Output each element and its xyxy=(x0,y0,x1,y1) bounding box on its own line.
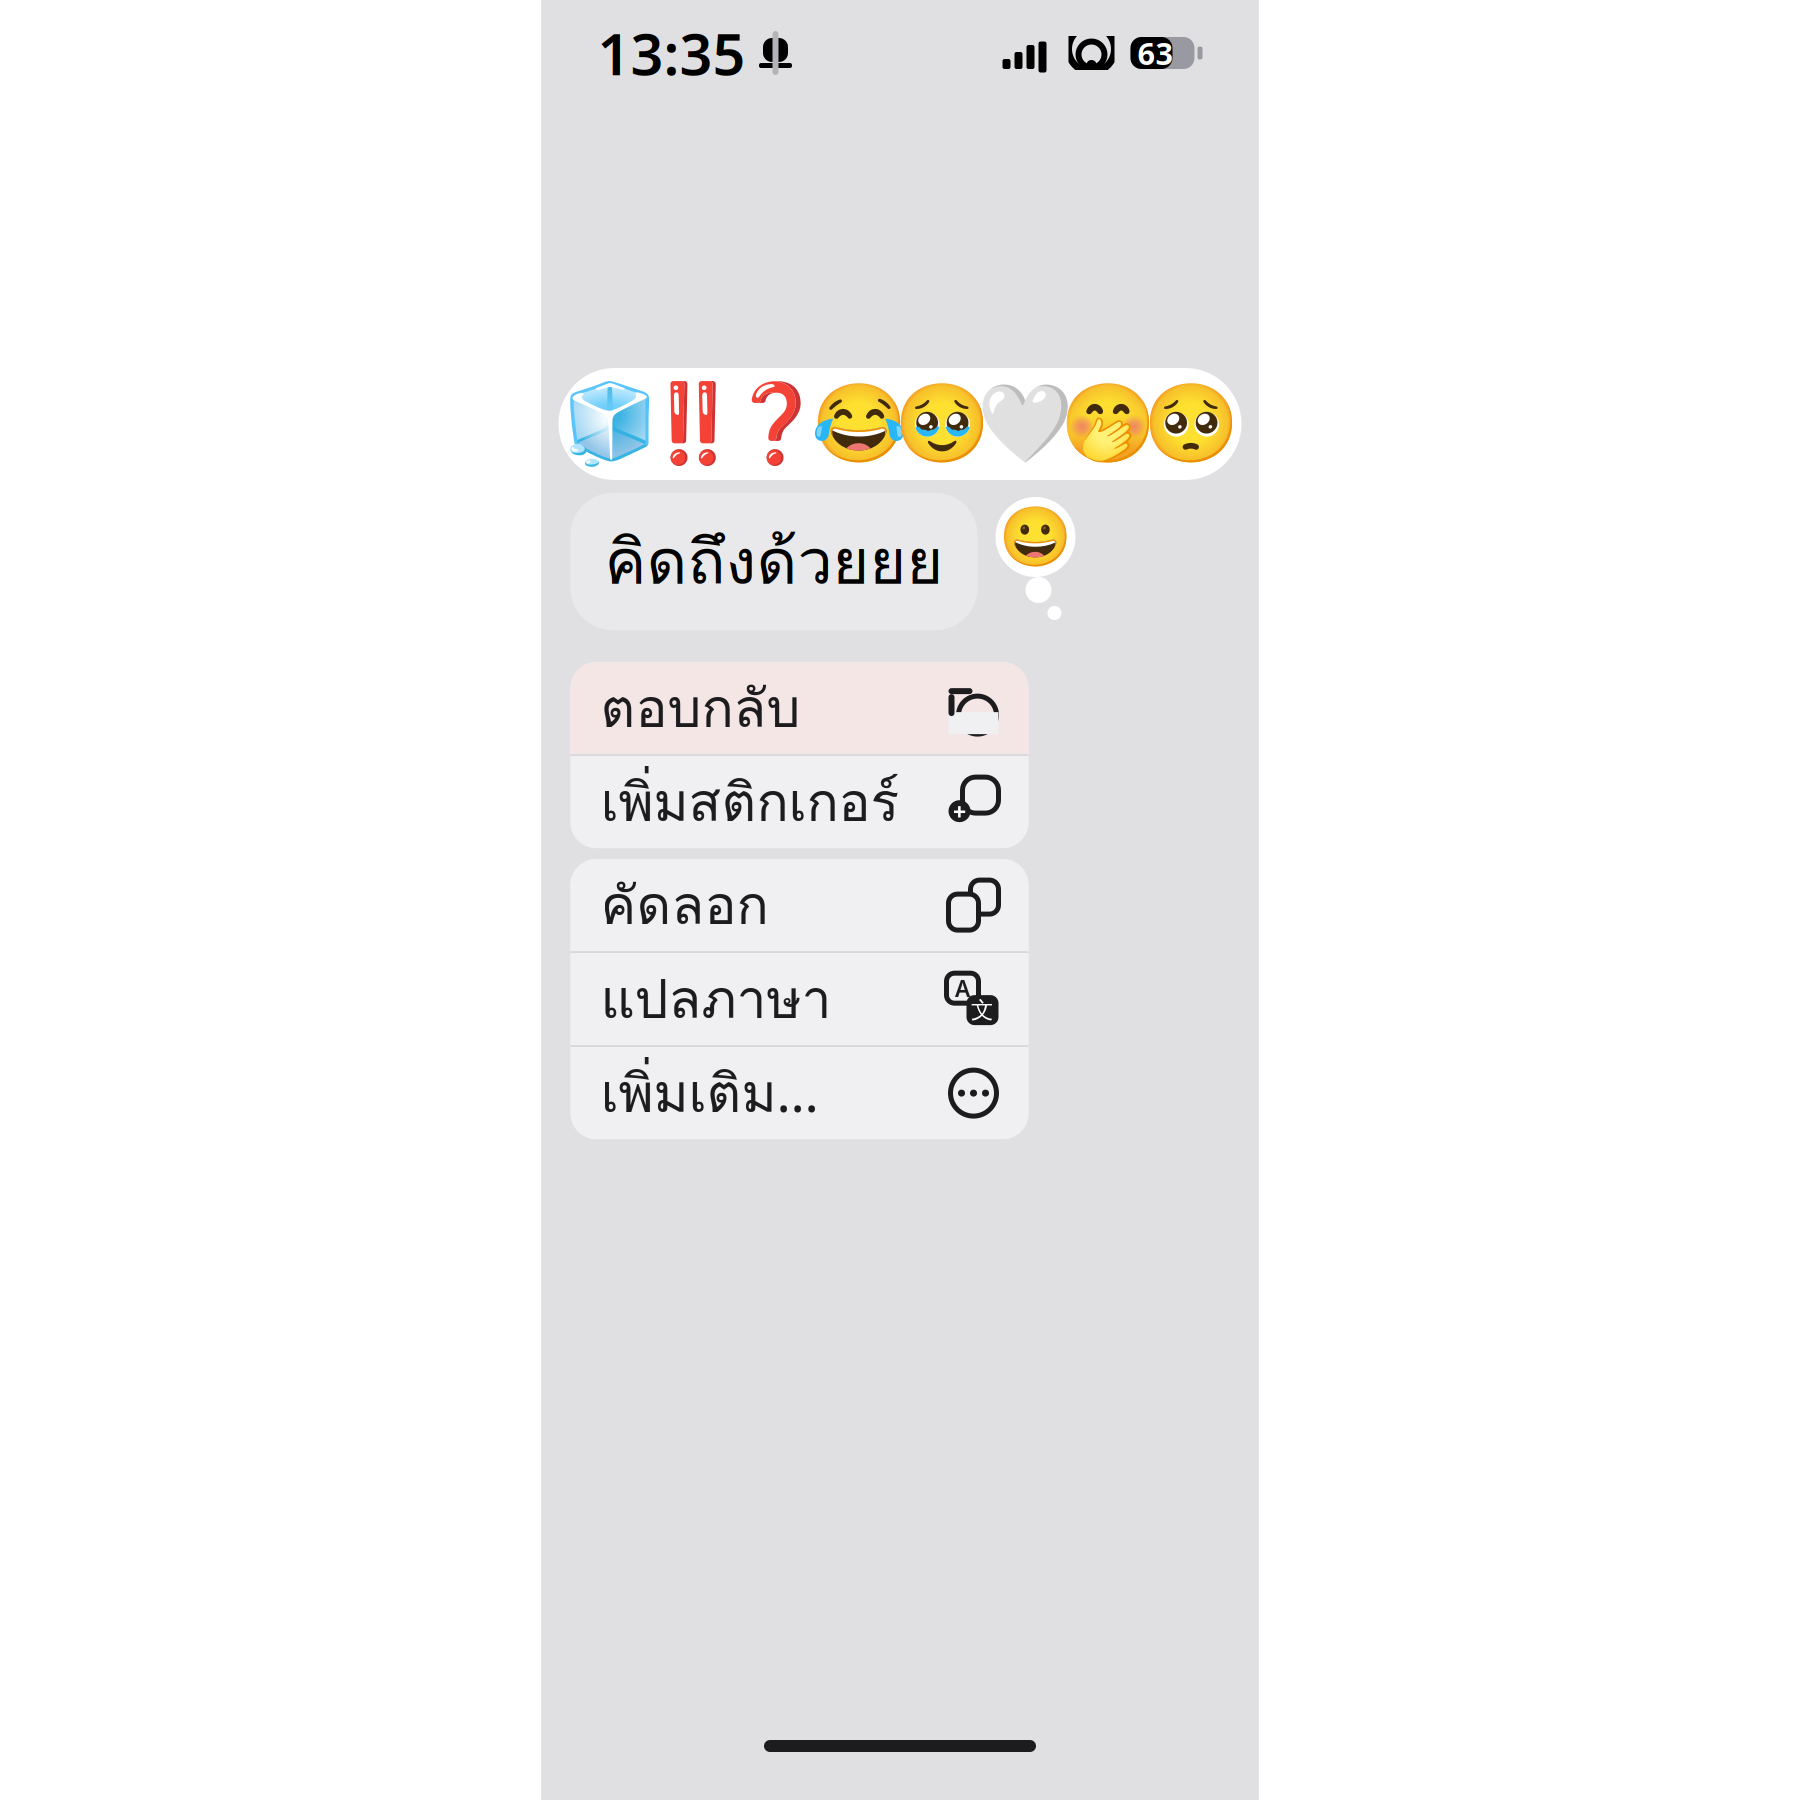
button[interactable]: Add reaction xyxy=(995,497,1075,577)
button[interactable]: Reply xyxy=(570,662,1028,754)
staticText: แปลภาษา xyxy=(600,958,831,1040)
staticText: เพิ่มเติม... xyxy=(600,1052,818,1134)
button[interactable]: Laughing xyxy=(817,368,900,480)
button[interactable]: Exclamation xyxy=(651,368,734,480)
button[interactable]: White heart xyxy=(983,368,1066,480)
button[interactable]: Pleading xyxy=(1149,368,1232,480)
staticText: 🤍 xyxy=(976,380,1072,468)
staticText: คัดลอก xyxy=(600,864,768,946)
staticText: เพิ่มสติกเกอร์ xyxy=(600,761,899,843)
button[interactable]: Hand over mouth xyxy=(1066,368,1149,480)
button[interactable]: Copy xyxy=(570,859,1028,951)
button[interactable]: Translate xyxy=(570,953,1028,1045)
button[interactable]: Holding back tears xyxy=(900,368,983,480)
staticText: 13:35 xyxy=(597,15,745,91)
staticText: 🤭 xyxy=(1059,380,1155,468)
staticText: 文 xyxy=(971,996,994,1024)
button[interactable]: Ice xyxy=(568,368,651,480)
staticText: 😂 xyxy=(810,380,906,468)
staticText: 🧊 xyxy=(561,380,657,468)
staticText: 😀 xyxy=(999,503,1072,570)
staticText: ‼️ xyxy=(644,380,740,468)
staticText: + xyxy=(952,795,966,827)
button[interactable]: Add sticker xyxy=(570,756,1028,848)
staticText: ❓ xyxy=(727,380,823,468)
staticText: ตอบกลับ xyxy=(600,667,800,749)
staticText: A xyxy=(955,973,970,1003)
staticText: 🥹 xyxy=(893,380,989,468)
staticText: 63 xyxy=(1137,33,1173,73)
staticText: คิดถึงด้วยยย xyxy=(604,513,943,610)
button[interactable]: More xyxy=(570,1047,1028,1139)
staticText: 🥺 xyxy=(1142,380,1238,468)
button[interactable]: Question xyxy=(734,368,817,480)
